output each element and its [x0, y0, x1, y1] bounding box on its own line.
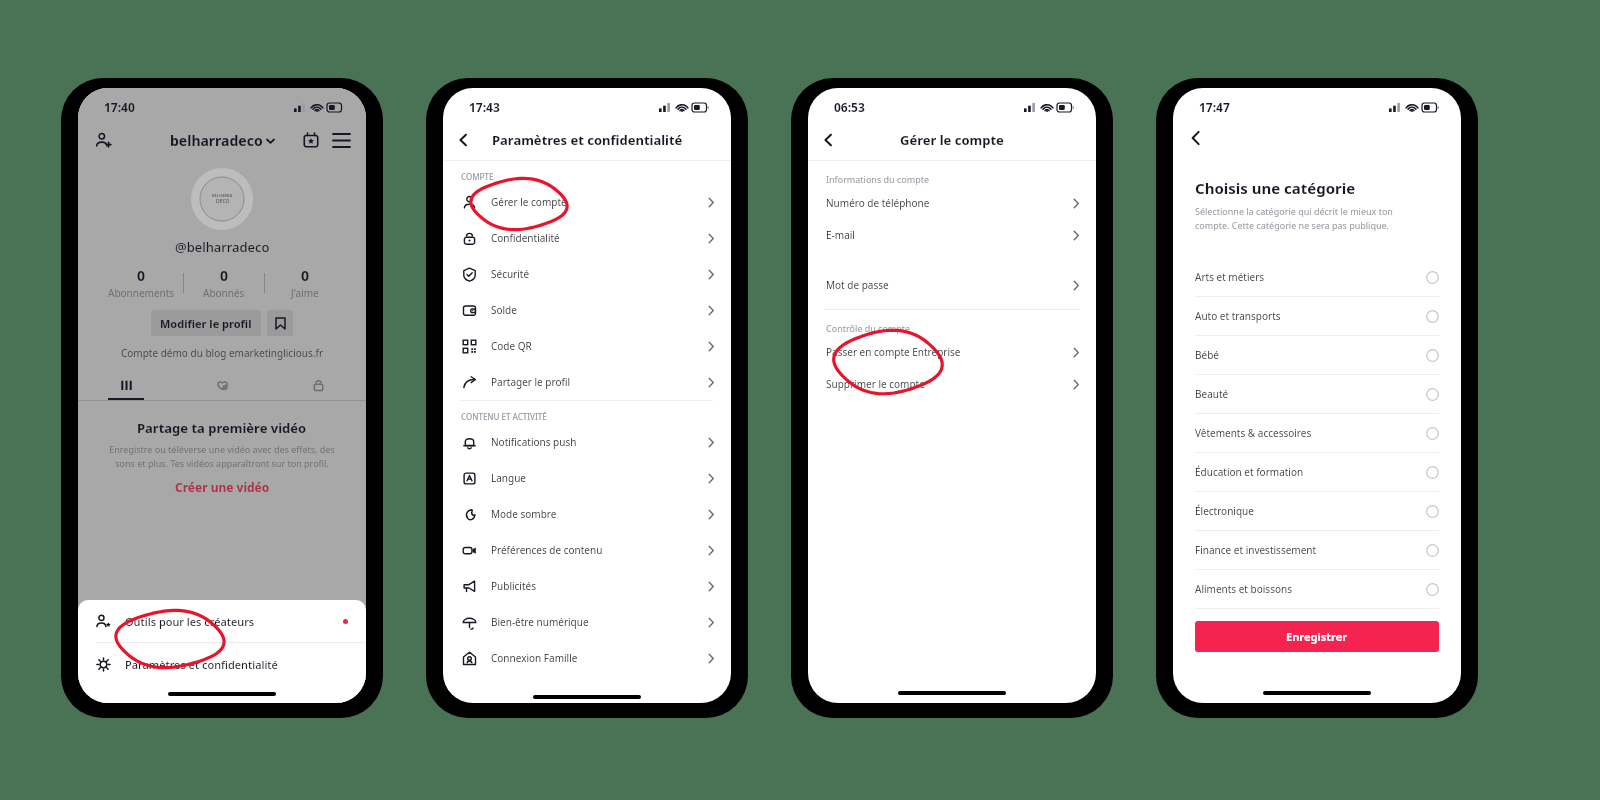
- button[interactable]: [174, 370, 270, 400]
- staticText: Choisis une catégorie: [1195, 178, 1356, 198]
- staticText: Arts et métiers: [1195, 270, 1426, 284]
- staticText: Paramètres et confidentialité: [125, 657, 278, 672]
- staticText: Outils pour les créateurs: [125, 614, 343, 629]
- button[interactable]: Outils pour les créateurs: [78, 600, 366, 642]
- staticText: Modifier le profil: [160, 316, 252, 331]
- button[interactable]: Back: [808, 120, 848, 160]
- staticText: Confidentialité: [491, 231, 707, 245]
- staticText: BELHARRA: [212, 193, 233, 198]
- button[interactable]: Shop: [296, 125, 326, 155]
- button[interactable]: Solde: [443, 292, 731, 328]
- staticText: Notifications push: [491, 435, 707, 449]
- button[interactable]: Enregistrer: [1195, 621, 1439, 652]
- staticText: Langue: [491, 471, 707, 485]
- staticText: Gérer le compte: [491, 195, 707, 209]
- staticText: Paramètres et confidentialité: [492, 131, 683, 149]
- button[interactable]: Add friends: [88, 125, 118, 155]
- staticText: Finance et investissement: [1195, 543, 1426, 557]
- button[interactable]: Passer en compte Entreprise: [808, 340, 1096, 364]
- button[interactable]: Créer une vidéo: [175, 479, 270, 495]
- button[interactable]: Aliments et boissons: [1195, 570, 1439, 608]
- button[interactable]: Sécurité: [443, 256, 731, 292]
- button[interactable]: Publicités: [443, 568, 731, 604]
- staticText: Partage ta première vidéo: [137, 419, 307, 437]
- staticText: COMPTE: [461, 171, 494, 182]
- staticText: @belharradeco: [175, 238, 270, 256]
- staticText: Sélectionne la catégorie qui décrit le m…: [1195, 205, 1393, 232]
- button[interactable]: Électronique: [1195, 492, 1439, 530]
- staticText: Mode sombre: [491, 507, 707, 521]
- staticText: Bien-être numérique: [491, 615, 707, 629]
- button[interactable]: Gérer le compte: [443, 184, 731, 220]
- button[interactable]: belharradeco: [170, 131, 275, 150]
- button[interactable]: Bien-être numérique: [443, 604, 731, 640]
- staticText: Connexion Famille: [491, 651, 707, 665]
- staticText: Compte démo du blog emarketinglicious.fr: [121, 346, 324, 360]
- staticText: Passer en compte Entreprise: [826, 345, 1072, 359]
- staticText: DECO: [216, 198, 230, 205]
- staticText: 17:47: [1199, 99, 1230, 115]
- button[interactable]: [270, 370, 366, 400]
- staticText: Bébé: [1195, 348, 1426, 362]
- button[interactable]: Notifications push: [443, 424, 731, 460]
- staticText: J'aime: [291, 286, 319, 300]
- staticText: Abonnements: [108, 286, 175, 300]
- button[interactable]: Arts et métiers: [1195, 258, 1439, 296]
- button[interactable]: Back: [1181, 123, 1211, 153]
- button[interactable]: Back: [443, 120, 483, 160]
- button[interactable]: Menu: [326, 125, 356, 155]
- button[interactable]: Bookmarks: [267, 310, 293, 336]
- button[interactable]: Modifier le profil: [151, 310, 261, 336]
- button[interactable]: Auto et transports: [1195, 297, 1439, 335]
- staticText: Vêtements & accessoires: [1195, 426, 1426, 440]
- staticText: Solde: [491, 303, 707, 317]
- staticText: CONTENU ET ACTIVITÉ: [461, 411, 547, 422]
- staticText: 0: [301, 266, 310, 285]
- staticText: Éducation et formation: [1195, 465, 1426, 479]
- staticText: 17:43: [469, 99, 500, 115]
- button[interactable]: Partager le profil: [443, 364, 731, 400]
- staticText: Numéro de téléphone: [826, 196, 1072, 210]
- button[interactable]: Paramètres et confidentialité: [78, 643, 366, 685]
- staticText: Beauté: [1195, 387, 1426, 401]
- staticText: 0: [220, 266, 229, 285]
- staticText: Enregistre ou téléverse une vidéo avec d…: [78, 443, 366, 469]
- button[interactable]: Code QR: [443, 328, 731, 364]
- staticText: Partager le profil: [491, 375, 707, 389]
- staticText: Gérer le compte: [900, 131, 1004, 149]
- button[interactable]: Bébé: [1195, 336, 1439, 374]
- staticText: Auto et transports: [1195, 309, 1426, 323]
- staticText: E-mail: [826, 228, 1072, 242]
- staticText: Publicités: [491, 579, 707, 593]
- button[interactable]: Mot de passe: [808, 273, 1096, 297]
- staticText: Enregistrer: [1286, 629, 1348, 644]
- staticText: Aliments et boissons: [1195, 582, 1426, 596]
- button[interactable]: Supprimer le compte: [808, 372, 1096, 396]
- button[interactable]: Finance et investissement: [1195, 531, 1439, 569]
- button[interactable]: Mode sombre: [443, 496, 731, 532]
- staticText: Électronique: [1195, 504, 1426, 518]
- button[interactable]: [78, 370, 174, 400]
- button[interactable]: Langue: [443, 460, 731, 496]
- button[interactable]: 0: [99, 266, 183, 300]
- staticText: Informations du compte: [826, 173, 930, 185]
- button[interactable]: Vêtements & accessoires: [1195, 414, 1439, 452]
- button[interactable]: Préférences de contenu: [443, 532, 731, 568]
- button[interactable]: 0: [184, 266, 264, 300]
- button[interactable]: BELHARRA: [191, 168, 253, 230]
- staticText: Mot de passe: [826, 278, 1072, 292]
- staticText: belharradeco: [170, 131, 263, 150]
- staticText: Supprimer le compte: [826, 377, 1072, 391]
- button[interactable]: 0: [265, 266, 345, 300]
- button[interactable]: E-mail: [808, 223, 1096, 247]
- button[interactable]: Éducation et formation: [1195, 453, 1439, 491]
- button[interactable]: Connexion Famille: [443, 640, 731, 676]
- button[interactable]: Beauté: [1195, 375, 1439, 413]
- staticText: 17:40: [104, 99, 135, 115]
- button[interactable]: Confidentialité: [443, 220, 731, 256]
- staticText: Code QR: [491, 339, 707, 353]
- staticText: 0: [137, 266, 146, 285]
- staticText: Abonnés: [203, 286, 245, 300]
- staticText: Préférences de contenu: [491, 543, 707, 557]
- button[interactable]: Numéro de téléphone: [808, 191, 1096, 215]
